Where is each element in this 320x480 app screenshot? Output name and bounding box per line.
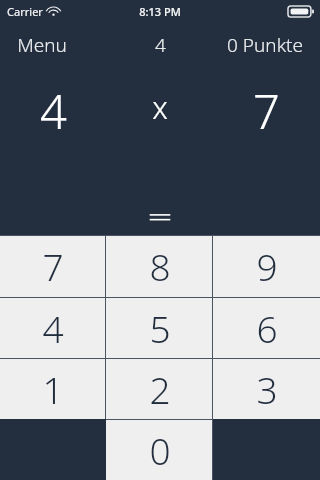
staticText: x	[152, 86, 168, 128]
button[interactable]: 0	[106, 419, 213, 480]
staticText: 7	[253, 79, 280, 135]
staticText: ?	[151, 236, 170, 295]
staticText: 7	[42, 241, 64, 291]
staticText: 2	[149, 364, 171, 414]
staticText: 4	[40, 79, 67, 135]
staticText: 0	[149, 425, 171, 475]
button[interactable]: 9	[213, 235, 320, 297]
button[interactable]: 8	[106, 235, 213, 297]
staticText: 0 Punkte	[227, 32, 303, 58]
button[interactable]: 3	[213, 358, 320, 419]
button[interactable]: 2	[106, 358, 213, 419]
staticText: 9	[256, 241, 278, 291]
staticText: Menu	[17, 32, 67, 58]
staticText: 8	[149, 241, 171, 291]
button[interactable]: Menu	[0, 26, 79, 64]
staticText: 1	[42, 364, 64, 414]
staticText: Carrier	[7, 4, 43, 19]
button[interactable]: 7	[0, 235, 106, 297]
button[interactable]: 4	[0, 297, 106, 358]
button[interactable]: 5	[106, 297, 213, 358]
staticText: 3	[256, 364, 278, 414]
staticText: 5	[149, 303, 171, 353]
staticText: 8:13 PM	[139, 4, 181, 19]
button[interactable]: 0 Punkte	[215, 26, 320, 64]
staticText: 4	[42, 303, 64, 353]
staticText: 6	[256, 303, 278, 353]
button[interactable]: 1	[0, 358, 106, 419]
button[interactable]: 6	[213, 297, 320, 358]
staticText: 4	[155, 32, 166, 58]
